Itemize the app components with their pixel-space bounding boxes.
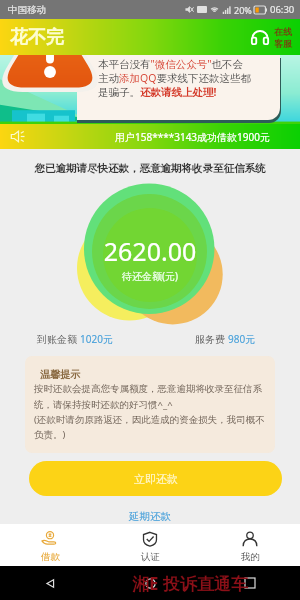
- staticText: 在线: [274, 26, 292, 37]
- button[interactable]: 认证: [100, 524, 200, 566]
- staticText: 980元: [228, 332, 256, 346]
- staticText: 到账金额: [37, 332, 80, 346]
- button[interactable]: Home: [140, 573, 160, 593]
- staticText: 是骗子。还款请线上处理!: [98, 85, 217, 99]
- staticText: 立即还款: [134, 472, 178, 486]
- staticText: 20%: [234, 4, 252, 16]
- staticText: 湘E 投诉直通车: [132, 572, 248, 595]
- staticText: 认证: [141, 551, 160, 563]
- staticText: 花不完: [10, 26, 64, 49]
- button[interactable]: Back: [40, 573, 60, 593]
- staticText: 我的: [241, 551, 260, 563]
- staticText: 温馨提示: [40, 368, 80, 381]
- button[interactable]: 立即还款: [29, 461, 282, 496]
- staticText: 按时还款会提高您专属额度，恶意逾期将收录至征信系统，请保持按时还款的好习惯^_^…: [34, 383, 266, 440]
- button[interactable]: 延期还款: [125, 506, 175, 527]
- staticText: 借款: [41, 551, 60, 563]
- staticText: 06:30: [270, 3, 295, 16]
- staticText: 服务费: [195, 332, 228, 346]
- staticText: 本平台没有"微信公众号"也不会: [98, 57, 244, 71]
- button[interactable]: Recents: [240, 573, 260, 593]
- staticText: 您已逾期请尽快还款，恶意逾期将收录至征信系统: [0, 162, 300, 175]
- staticText: 中国移动: [8, 4, 46, 16]
- staticText: 主动添加QQ要求线下还款这些都: [98, 71, 251, 85]
- staticText: 延期还款: [129, 510, 171, 523]
- staticText: 2620.00: [0, 234, 300, 268]
- button[interactable]: 在线客服: [249, 26, 292, 49]
- staticText: 待还金额(元): [0, 269, 300, 283]
- staticText: 1020元: [80, 332, 113, 346]
- staticText: 用户158****3143成功借款1900元: [115, 130, 270, 144]
- button[interactable]: 我的: [200, 524, 300, 566]
- staticText: 客服: [274, 38, 292, 49]
- button[interactable]: 借款: [0, 524, 100, 566]
